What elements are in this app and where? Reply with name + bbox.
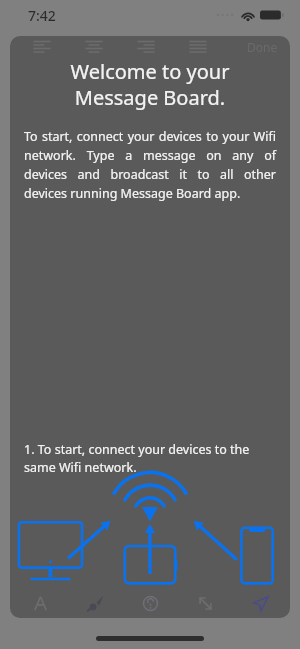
button[interactable]: Align option 4 (172, 36, 224, 58)
staticText: 1. To start, connect your devices to the… (24, 441, 276, 476)
button[interactable]: Send (238, 588, 282, 618)
staticText: Done (247, 39, 278, 55)
staticText: To start, connect your devices to your W… (24, 128, 276, 202)
staticText: Welcome to your Message Board. (24, 58, 276, 110)
staticText: 7:42 (28, 6, 56, 25)
button[interactable]: Expand (183, 588, 227, 618)
button[interactable]: Draw (73, 588, 117, 618)
button[interactable]: Align option 3 (120, 36, 172, 58)
button[interactable]: Done (243, 37, 282, 57)
button[interactable]: Text format (18, 588, 62, 618)
button[interactable]: Help (128, 588, 172, 618)
button[interactable]: Align option 2 (68, 36, 120, 58)
button[interactable]: Align option 1 (16, 36, 68, 58)
